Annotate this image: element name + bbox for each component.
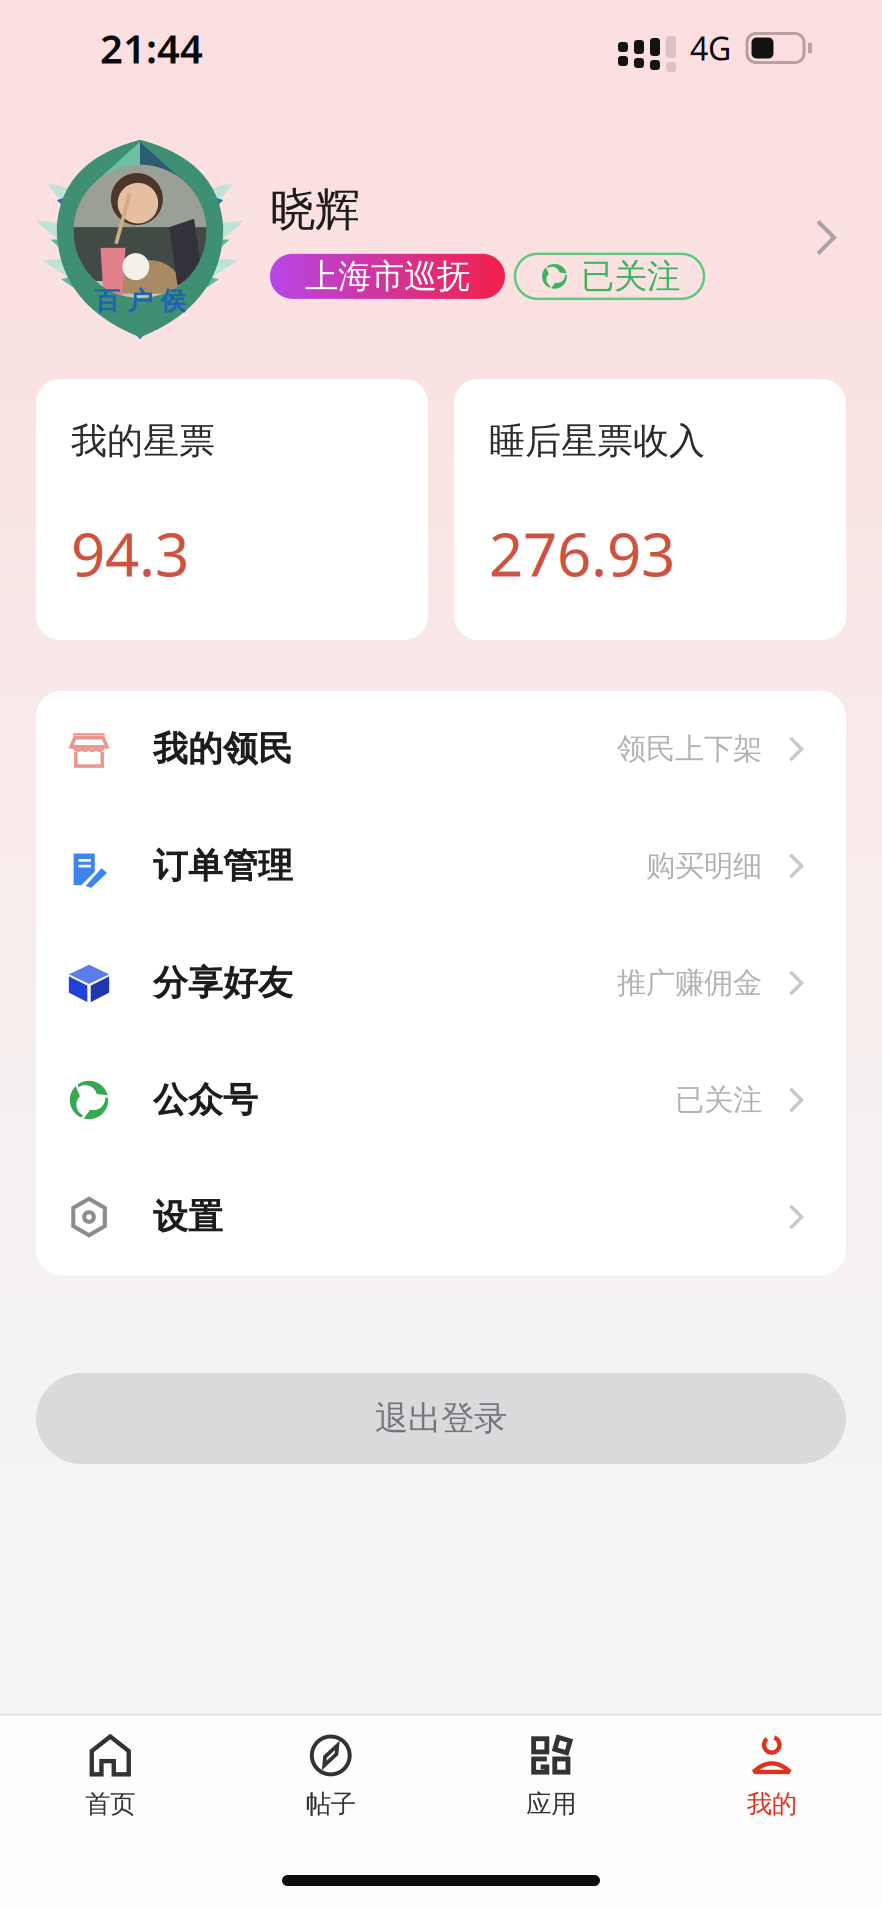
button[interactable]: 睡后星票收入 bbox=[454, 379, 846, 640]
staticText: 94.3 bbox=[71, 513, 189, 593]
staticText: 睡后星票收入 bbox=[489, 419, 705, 463]
button[interactable]: 公众号 bbox=[36, 1041, 846, 1158]
button[interactable]: 我的星票 bbox=[36, 379, 428, 640]
staticText: 我的星票 bbox=[71, 419, 215, 463]
button[interactable]: 设置 bbox=[36, 1158, 846, 1275]
button[interactable]: 我的领民 bbox=[36, 690, 846, 807]
staticText: 276.93 bbox=[489, 513, 675, 593]
button[interactable]: 订单管理 bbox=[36, 807, 846, 924]
button[interactable]: 帖子 bbox=[220, 1715, 441, 1837]
button[interactable]: 首页 bbox=[0, 1715, 220, 1837]
staticText: 公众号 bbox=[153, 1079, 258, 1121]
staticText: 领民上下架 bbox=[617, 731, 762, 767]
button[interactable]: 分享好友 bbox=[36, 924, 846, 1041]
button[interactable]: 百 户 侯 bbox=[0, 133, 882, 341]
staticText: 我的领民 bbox=[153, 728, 293, 770]
staticText: 应用 bbox=[526, 1788, 576, 1819]
button[interactable]: 我的 bbox=[661, 1715, 882, 1837]
staticText: 订单管理 bbox=[153, 845, 293, 887]
staticText: 推广赚佣金 bbox=[617, 965, 762, 1001]
staticText: 分享好友 bbox=[153, 962, 293, 1004]
staticText: 帖子 bbox=[306, 1788, 356, 1819]
staticText: 我的 bbox=[747, 1788, 797, 1819]
staticText: 首页 bbox=[85, 1788, 135, 1819]
staticText: 设置 bbox=[153, 1196, 223, 1238]
staticText: 退出登录 bbox=[375, 1398, 507, 1439]
staticText: 4G bbox=[690, 27, 731, 69]
staticText: 购买明细 bbox=[646, 848, 762, 884]
button[interactable]: 应用 bbox=[441, 1715, 661, 1837]
staticText: 已关注 bbox=[675, 1082, 762, 1118]
staticText: 上海市巡抚 bbox=[305, 256, 470, 297]
button[interactable]: 退出登录 bbox=[36, 1373, 846, 1464]
staticText: 21:44 bbox=[100, 21, 203, 74]
staticText: 晓辉 bbox=[270, 182, 360, 238]
staticText: 已关注 bbox=[581, 256, 680, 297]
staticText: 百 户 侯 bbox=[94, 285, 185, 316]
